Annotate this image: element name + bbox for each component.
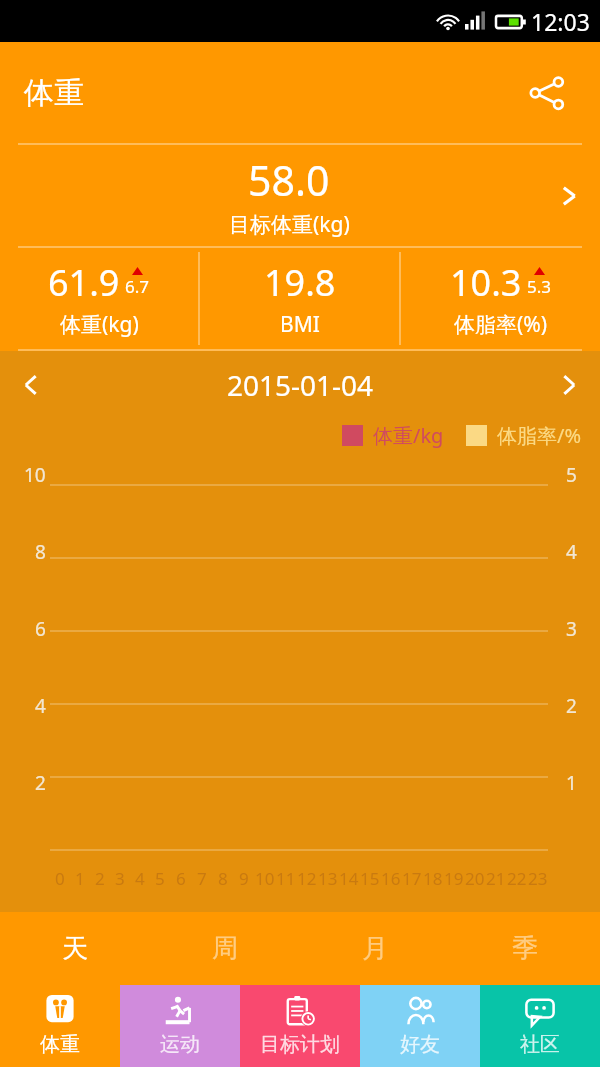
staticText: 10.3 [450,258,522,307]
button[interactable]: 天 [0,912,150,985]
staticText: 天 [62,932,88,965]
button[interactable]: 目标计划 [240,985,360,1067]
staticText: 13 [318,867,338,890]
staticText: 2 [35,770,46,796]
button[interactable]: 10.3 [401,248,600,349]
staticText: 2 [95,867,105,890]
staticText: 5 [566,462,577,488]
staticText: 社区 [520,1032,560,1057]
staticText: 体重/kg [373,422,444,449]
button[interactable]: Next day [538,351,600,418]
staticText: 目标计划 [260,1032,340,1057]
staticText: 16 [381,867,401,890]
staticText: 体脂率(%) [454,310,548,339]
staticText: 12:03 [531,6,590,37]
staticText: 15 [360,867,380,890]
staticText: 19.8 [264,258,336,307]
staticText: 目标体重(kg) [229,210,350,239]
staticText: 0 [55,867,65,890]
staticText: 8 [35,539,46,565]
staticText: 17 [402,867,422,890]
staticText: 1 [75,867,85,890]
staticText: 5 [155,867,165,890]
staticText: 体重 [24,74,84,112]
staticText: 季 [512,932,538,965]
staticText: 22 [507,867,527,890]
staticText: 2 [566,693,577,719]
staticText: 周 [212,932,238,965]
staticText: 6 [35,616,46,642]
staticText: 3 [566,616,577,642]
staticText: 3 [115,867,125,890]
staticText: 6 [176,867,186,890]
staticText: 2015-01-04 [62,366,538,404]
button[interactable]: 好友 [360,985,480,1067]
staticText: 20 [465,867,485,890]
button[interactable]: 体重 [0,985,120,1067]
staticText: 5.3 [527,275,552,298]
staticText: 体重 [40,1032,80,1057]
staticText: BMI [280,310,320,339]
staticText: 6.7 [125,275,150,298]
button[interactable]: 61.9 [0,248,198,349]
staticText: 4 [566,539,577,565]
button[interactable]: 58.0 [0,145,600,246]
staticText: 4 [135,867,145,890]
staticText: 体脂率/% [497,422,582,449]
staticText: 23 [528,867,548,890]
button[interactable]: 运动 [120,985,240,1067]
staticText: 8 [218,867,228,890]
staticText: 14 [339,867,359,890]
staticText: 19 [444,867,464,890]
button[interactable]: Previous day [0,351,62,418]
staticText: 月 [362,932,388,965]
staticText: 运动 [160,1032,200,1057]
staticText: 61.9 [48,258,120,307]
staticText: 9 [239,867,249,890]
button[interactable]: 周 [150,912,300,985]
staticText: 18 [423,867,443,890]
staticText: 11 [276,867,296,890]
staticText: 10 [255,867,275,890]
button[interactable]: Share [518,64,576,122]
staticText: 58.0 [248,152,330,208]
staticText: 好友 [400,1032,440,1057]
staticText: 1 [566,770,577,796]
staticText: 4 [35,693,46,719]
staticText: 7 [197,867,207,890]
staticText: 21 [486,867,506,890]
staticText: 12 [297,867,317,890]
staticText: 10 [24,462,46,488]
staticText: 体重(kg) [60,310,139,339]
button[interactable]: 月 [300,912,450,985]
button[interactable]: 社区 [480,985,600,1067]
button[interactable]: 季 [450,912,600,985]
button[interactable]: 19.8 [200,248,399,349]
